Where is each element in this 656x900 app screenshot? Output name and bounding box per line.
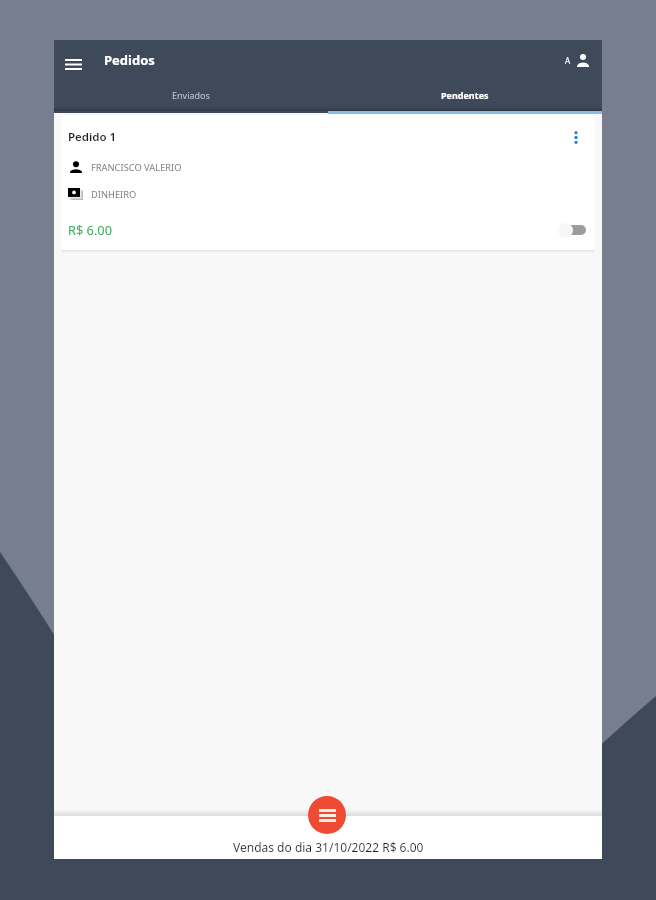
staticText: Vendas do dia 31/10/2022 R$ 6.00 — [233, 839, 424, 855]
staticText: R$ 6.00 — [68, 221, 112, 238]
staticText: Pedidos — [104, 51, 155, 69]
button[interactable]: Pendentes — [328, 80, 602, 110]
button[interactable]: Enviados — [54, 80, 328, 110]
staticText: Pedido 1 — [68, 129, 117, 145]
button[interactable]: Menu — [308, 796, 346, 834]
staticText: Enviados — [172, 89, 210, 101]
staticText: FRANCISCO VALERIO — [91, 161, 182, 174]
button[interactable]: Open navigation drawer — [55, 46, 91, 82]
button[interactable]: Pedido 1 — [61, 115, 595, 250]
button[interactable]: Account — [567, 44, 597, 76]
staticText: A — [565, 55, 571, 66]
button[interactable]: More options — [566, 127, 586, 147]
staticText: Pendentes — [441, 89, 489, 101]
staticText: DINHEIRO — [91, 188, 137, 201]
button[interactable]: Mark order sent — [558, 221, 586, 239]
